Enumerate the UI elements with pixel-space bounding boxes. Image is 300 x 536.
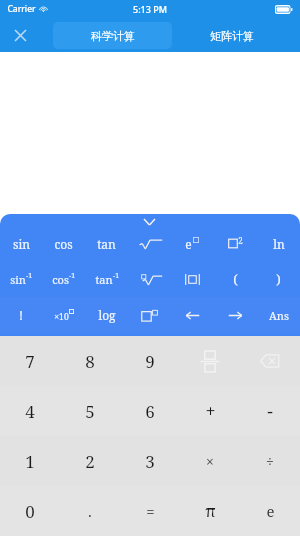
button[interactable]: 2 [60,436,120,486]
button[interactable]: sin [0,226,42,261]
button[interactable]: ( [214,261,257,297]
staticText: sin [10,272,26,287]
button[interactable]: ) [257,261,300,297]
button[interactable] [128,261,171,297]
staticText: 7 [25,350,35,373]
button[interactable]: tan [85,261,128,297]
staticText: sin [13,236,30,252]
button[interactable]: ln [257,226,300,261]
staticText: 9 [145,350,155,373]
staticText: log [98,307,116,323]
button[interactable]: 4 [0,386,60,436]
staticText: -1 [69,271,75,280]
staticText: = [146,501,155,521]
button[interactable]: log [85,297,128,333]
staticText: ÷ [266,452,274,471]
button[interactable]: ÷ [240,436,300,486]
staticText: 矩阵计算 [210,29,254,43]
button[interactable]: π [180,486,240,536]
staticText: -1 [26,271,32,280]
button[interactable] [128,297,171,333]
button[interactable]: 3 [120,436,180,486]
staticText: + [205,399,216,424]
button[interactable]: 7 [0,336,60,386]
staticText: e [185,236,192,252]
staticText: cos [52,272,69,287]
button[interactable] [171,261,214,297]
staticText: 0 [25,500,35,523]
staticText: 6 [145,400,155,423]
button[interactable]: e [171,226,214,261]
button[interactable]: + [180,386,240,436]
button[interactable]: 1 [0,436,60,486]
staticText: ( [233,270,238,288]
staticText: Ans [269,308,289,323]
staticText: π [205,500,216,522]
staticText: - [267,399,273,424]
staticText: e [266,501,275,521]
button[interactable]: Ans [257,297,300,333]
button[interactable]: 5 [60,386,120,436]
button[interactable]: ×10 [42,297,85,333]
staticText: tan [97,236,116,252]
staticText: ×10 [54,311,69,323]
staticText: tan [95,272,113,287]
staticText: . [88,501,92,521]
button[interactable]: = [120,486,180,536]
staticText: 4 [25,400,35,423]
button[interactable]: 6 [120,386,180,436]
staticText: 2 [85,450,95,473]
button[interactable]: × [180,436,240,486]
staticText: 5:13 PM [133,3,167,15]
button[interactable]: Close [8,23,32,47]
staticText: ) [276,270,281,288]
button[interactable]: . [60,486,120,536]
staticText: 科学计算 [91,29,135,43]
staticText: 2 [238,235,243,246]
staticText: 1 [25,450,35,473]
button[interactable]: 8 [60,336,120,386]
button[interactable]: ! [0,297,42,333]
button[interactable]: 2 [214,226,257,261]
button[interactable]: 矩阵计算 [172,22,291,49]
button[interactable]: 0 [0,486,60,536]
staticText: Carrier [7,3,36,15]
button[interactable] [171,297,214,333]
staticText: cos [54,236,73,252]
staticText: 5 [85,400,95,423]
staticText: ln [273,236,285,252]
button[interactable] [128,226,171,261]
button[interactable]: cos [42,226,85,261]
button[interactable]: sin [0,261,42,297]
staticText: □ [192,235,200,244]
staticText: ! [19,307,23,323]
button[interactable]: e [240,486,300,536]
button[interactable]: 9 [120,336,180,386]
button[interactable]: tan [85,226,128,261]
staticText: -1 [113,271,119,280]
button[interactable]: cos [42,261,85,297]
button[interactable]: - [240,386,300,436]
staticText: 8 [85,350,95,373]
button[interactable] [214,297,257,333]
staticText: 3 [145,450,155,473]
staticText: × [206,452,214,471]
button[interactable]: 科学计算 [53,22,172,49]
